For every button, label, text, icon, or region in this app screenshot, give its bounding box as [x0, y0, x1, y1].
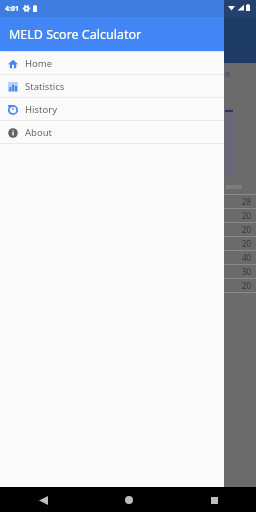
button[interactable]: About — [0, 121, 224, 143]
staticText: 20 — [242, 280, 252, 291]
staticText: About — [25, 126, 52, 139]
button[interactable]: Statistics — [0, 75, 224, 97]
button[interactable]: Back — [33, 490, 53, 510]
button[interactable]: Recent apps — [204, 490, 224, 510]
staticText: Statistics — [25, 80, 65, 93]
staticText: 28 — [242, 196, 252, 207]
staticText: 30 — [242, 266, 252, 277]
staticText: 40 — [242, 252, 252, 263]
staticText: 20 — [242, 210, 252, 221]
staticText: MELD Score Calculator — [9, 26, 142, 43]
staticText: 20 — [242, 224, 252, 235]
button[interactable]: MELD Score Calculator — [0, 17, 224, 51]
staticText: History — [25, 103, 57, 116]
button[interactable]: History — [0, 98, 224, 120]
button[interactable]: Home — [0, 52, 224, 74]
button[interactable]: Home — [119, 490, 139, 510]
staticText: 4:01 — [5, 4, 19, 14]
staticText: 20 — [242, 238, 252, 249]
staticText: Home — [25, 57, 53, 70]
